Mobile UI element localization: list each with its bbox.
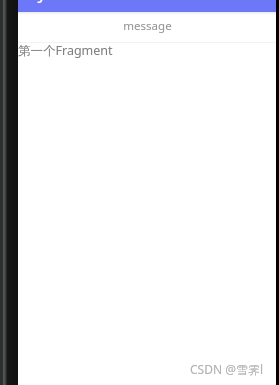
staticText: 第一个Fragment (18, 42, 113, 59)
staticText: CSDN @雪霁l (190, 361, 264, 377)
button[interactable]: App bar (18, 0, 276, 12)
button[interactable]: message (18, 15, 276, 42)
staticText: MyFirstDemo (22, 0, 129, 4)
staticText: message (123, 18, 172, 34)
